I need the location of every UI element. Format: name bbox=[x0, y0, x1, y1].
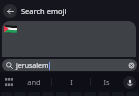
staticText: I bbox=[70, 77, 73, 87]
button[interactable]: and bbox=[17, 73, 51, 91]
button[interactable]: Clear search bbox=[126, 60, 137, 71]
staticText: Search emoji bbox=[21, 6, 67, 16]
button[interactable]: Back bbox=[3, 4, 17, 18]
button[interactable]: Flag of Palestine emoji bbox=[3, 21, 18, 36]
button[interactable]: jerusalem bbox=[2, 59, 137, 71]
button[interactable]: I bbox=[52, 73, 90, 91]
staticText: jerusalem bbox=[16, 61, 49, 71]
staticText: and bbox=[27, 77, 41, 87]
staticText: Is bbox=[103, 77, 110, 87]
button[interactable]: Is bbox=[91, 73, 122, 91]
button[interactable]: Voice input bbox=[123, 76, 136, 89]
button[interactable]: Switch keyboard bbox=[1, 74, 17, 90]
